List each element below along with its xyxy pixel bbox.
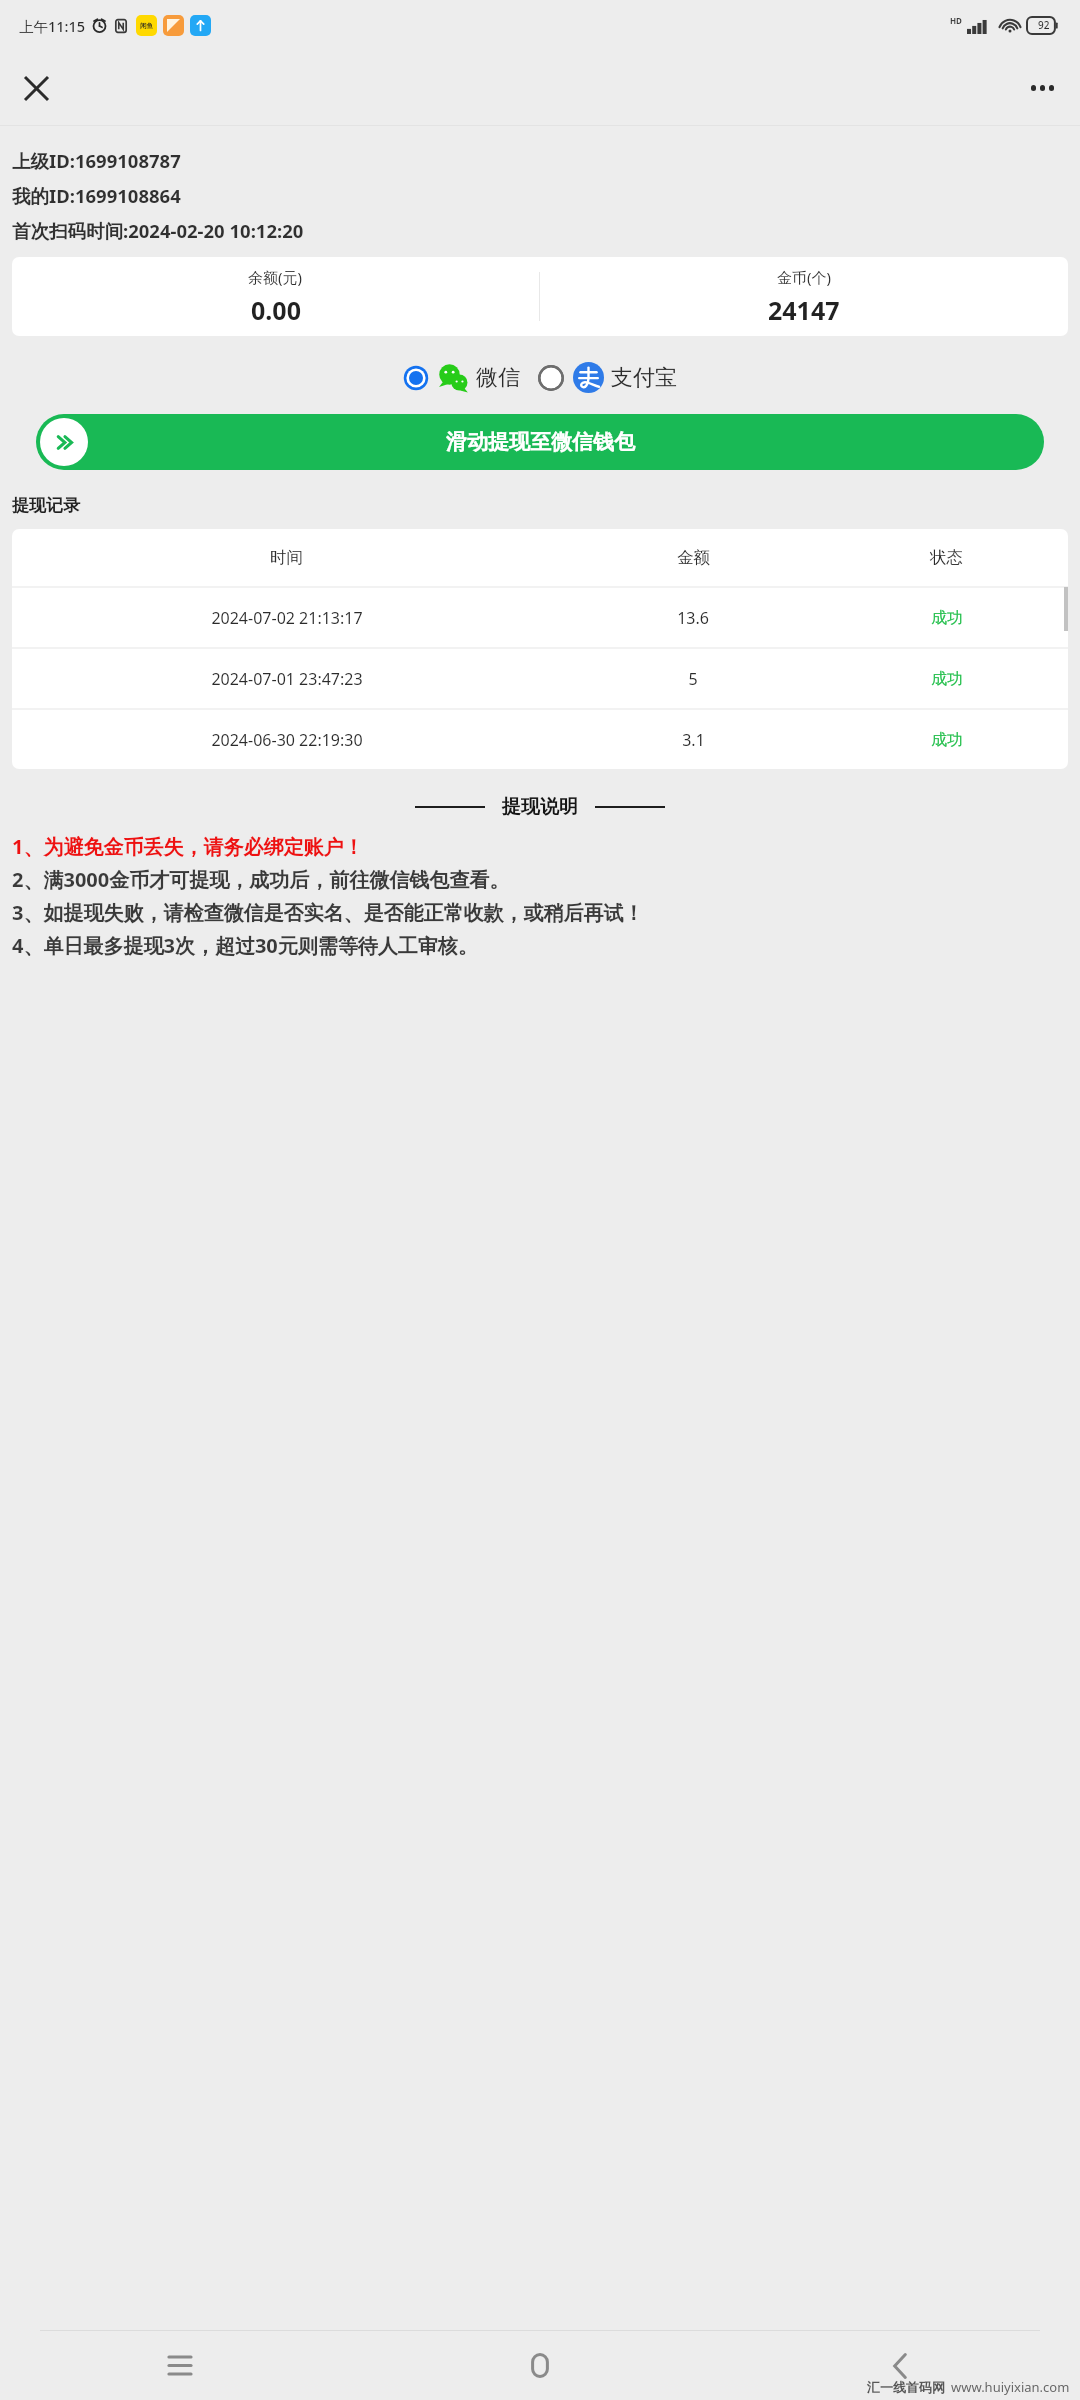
staticText: 金币(个) (777, 267, 832, 287)
staticText: 余额(元) (248, 267, 303, 287)
staticText: HD (950, 15, 962, 26)
staticText: 支付宝 (611, 364, 677, 392)
staticText: 2024-07-02 21:13:17 (211, 607, 363, 629)
staticText: 提现说明 (502, 795, 578, 819)
staticText: 92 (1038, 18, 1050, 32)
staticText: 3.1 (682, 729, 705, 751)
staticText: 上级ID:1699108787 (12, 148, 181, 173)
staticText: 首次扫码时间:2024-02-20 10:12:20 (12, 218, 304, 243)
staticText: 13.6 (677, 607, 709, 629)
staticText: 状态 (930, 547, 963, 568)
button[interactable]: More options (1016, 62, 1068, 114)
staticText: 24147 (768, 293, 840, 327)
button[interactable]: 2024-06-30 22:19:30 (12, 710, 1068, 769)
staticText: 1、为避免金币丢失，请务必绑定账户！ (12, 833, 364, 860)
staticText: 3、如提现失败，请检查微信是否实名、是否能正常收款，或稍后再试！ (12, 899, 644, 926)
button[interactable]: 支付宝 (536, 358, 679, 397)
staticText: 微信 (476, 364, 520, 392)
staticText: 0.00 (251, 293, 301, 327)
staticText: 提现记录 (12, 495, 80, 516)
staticText: 时间 (270, 547, 303, 568)
staticText: 成功 (931, 608, 963, 628)
staticText: 成功 (931, 730, 963, 750)
button[interactable]: 2024-07-02 21:13:17 (12, 588, 1068, 647)
staticText: 滑动提现至微信钱包 (446, 429, 635, 455)
button[interactable]: 2024-07-01 23:47:23 (12, 649, 1068, 708)
staticText: 上午11:15 (19, 16, 86, 36)
staticText: 2024-06-30 22:19:30 (211, 729, 363, 751)
staticText: 4、单日最多提现3次，超过30元则需等待人工审核。 (12, 932, 478, 959)
button[interactable]: Recent apps (0, 2331, 360, 2400)
staticText: 金额 (677, 547, 710, 568)
button[interactable]: Back (720, 2331, 1080, 2400)
button[interactable]: 滑动提现至微信钱包 (36, 414, 1044, 470)
staticText: 5 (688, 668, 698, 690)
staticText: 2024-07-01 23:47:23 (211, 668, 363, 690)
staticText: 汇一线首码网 (867, 2379, 945, 2395)
button[interactable]: Home (360, 2331, 720, 2400)
staticText: www.huiyixian.com (951, 2378, 1070, 2396)
staticText: 我的ID:1699108864 (12, 183, 181, 208)
staticText: 2、满3000金币才可提现，成功后，前往微信钱包查看。 (12, 866, 510, 893)
button[interactable]: 微信 (401, 358, 522, 397)
button[interactable]: Close (10, 62, 62, 114)
staticText: 成功 (931, 669, 963, 689)
staticText: 闲鱼 (140, 22, 153, 30)
